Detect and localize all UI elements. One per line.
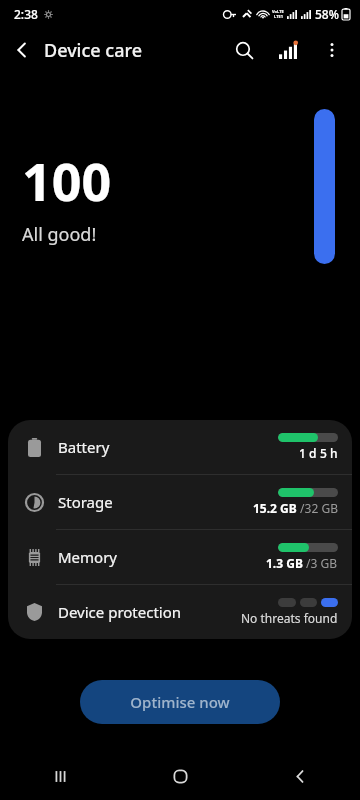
staticText: 58% — [315, 6, 339, 22]
button[interactable]: Device protection — [8, 585, 352, 639]
staticText: 5 h — [320, 445, 338, 461]
button[interactable]: Recent apps — [0, 752, 120, 800]
button[interactable]: Home — [120, 752, 240, 800]
staticText: 15.2 GB — [253, 500, 297, 516]
button[interactable]: Memory — [8, 530, 352, 584]
button[interactable]: Back — [240, 752, 360, 800]
button[interactable]: Storage — [8, 475, 352, 529]
staticText: 2:38 — [14, 6, 38, 22]
button[interactable]: More options — [310, 28, 354, 72]
staticText: All good! — [22, 222, 97, 247]
staticText: Storage — [58, 492, 253, 512]
staticText: LTE1 — [274, 14, 283, 19]
button[interactable]: Search — [222, 28, 266, 72]
staticText: VoLTE — [272, 9, 284, 14]
staticText: 1.3 GB — [266, 555, 303, 571]
button[interactable]: Battery — [8, 420, 352, 474]
staticText: Memory — [58, 547, 266, 567]
staticText: /32 GB — [297, 500, 338, 516]
button[interactable]: Usage statistics — [266, 28, 310, 72]
button[interactable]: Optimise now — [80, 680, 280, 724]
staticText: 1 d — [299, 445, 317, 461]
staticText: Battery — [58, 437, 278, 457]
staticText: 100 — [22, 145, 112, 216]
staticText: Device protection — [58, 602, 241, 622]
button[interactable]: Back — [0, 28, 44, 72]
staticText: Optimise now — [130, 692, 230, 712]
staticText: No threats found — [241, 610, 338, 626]
staticText: /3 GB — [303, 555, 338, 571]
staticText: Device care — [44, 38, 143, 63]
